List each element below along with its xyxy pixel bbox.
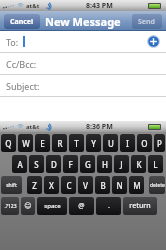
staticText: P [157,138,162,149]
staticText: C [66,180,72,191]
staticText: Cancel [10,17,34,27]
button[interactable]: I [120,134,135,152]
button[interactable]: V [78,176,93,194]
staticText: W [22,138,30,149]
button[interactable]: shift [1,176,22,194]
staticText: K [136,159,142,170]
button[interactable]: Send [138,14,156,29]
button[interactable]: D [46,155,61,173]
button[interactable]: L [148,155,163,173]
staticText: L [153,159,158,170]
button[interactable]: M [129,176,144,194]
staticText: return [129,201,151,211]
staticText: shift [6,182,17,189]
staticText: at&t [26,2,40,10]
button[interactable]: T [69,134,84,152]
staticText: N [116,180,123,191]
staticText: Subject: [6,80,40,92]
staticText: . [108,201,110,211]
button[interactable]: F [63,155,78,173]
staticText: I [126,138,129,149]
button[interactable]: B [95,176,110,194]
button[interactable]: A [12,155,27,173]
staticText: To: [6,36,19,48]
button[interactable]: ☺ [21,197,35,215]
button[interactable]: N [112,176,127,194]
staticText: delete [150,182,165,189]
button[interactable]: @ [69,197,94,215]
button[interactable]: . [96,197,121,215]
staticText: M [133,180,141,191]
staticText: O [141,138,148,149]
button[interactable]: S [29,155,44,173]
staticText: S [34,159,39,170]
staticText: New Message [45,14,121,29]
button[interactable]: R [52,134,67,152]
staticText: ☺ [24,202,32,210]
staticText: 8:43 PM [86,1,113,11]
staticText: at&t [26,123,40,131]
button[interactable]: delete [149,176,165,194]
staticText: X [49,180,54,191]
button[interactable]: G [80,155,95,173]
staticText: A [17,159,23,170]
staticText: T [74,138,79,149]
button[interactable]: K [131,155,146,173]
button[interactable]: .?123 [1,197,19,215]
staticText: space [44,202,61,210]
staticText: 8:36 PM [86,122,113,132]
staticText: Send [138,17,156,27]
staticText: Cc/Bcc: [6,58,37,70]
button[interactable]: J [114,155,129,173]
button[interactable]: H [97,155,112,173]
staticText: J [120,159,123,170]
button[interactable]: Q [1,134,16,152]
staticText: Z [32,180,37,191]
staticText: D [51,159,57,170]
button[interactable]: E [35,134,50,152]
button[interactable]: O [137,134,152,152]
staticText: B [100,180,106,191]
button[interactable]: W [18,134,33,152]
staticText: @ [78,201,85,211]
staticText: U [108,138,114,149]
staticText: Q [5,138,12,149]
button[interactable]: C [61,176,76,194]
button[interactable]: X [44,176,59,194]
staticText: .?123 [4,203,17,210]
button[interactable]: Y [86,134,101,152]
staticText: R [57,138,63,149]
staticText: F [68,159,73,170]
staticText: H [102,159,108,170]
button[interactable]: Add contact [147,35,160,48]
button[interactable]: P [154,134,165,152]
staticText: V [83,180,88,191]
staticText: Y [91,138,96,149]
staticText: G [85,159,91,170]
button[interactable]: U [103,134,118,152]
button[interactable]: Z [27,176,42,194]
button[interactable]: return [123,197,157,215]
staticText: E [40,138,45,149]
button[interactable]: Cancel [10,14,34,29]
button[interactable]: space [37,197,67,215]
